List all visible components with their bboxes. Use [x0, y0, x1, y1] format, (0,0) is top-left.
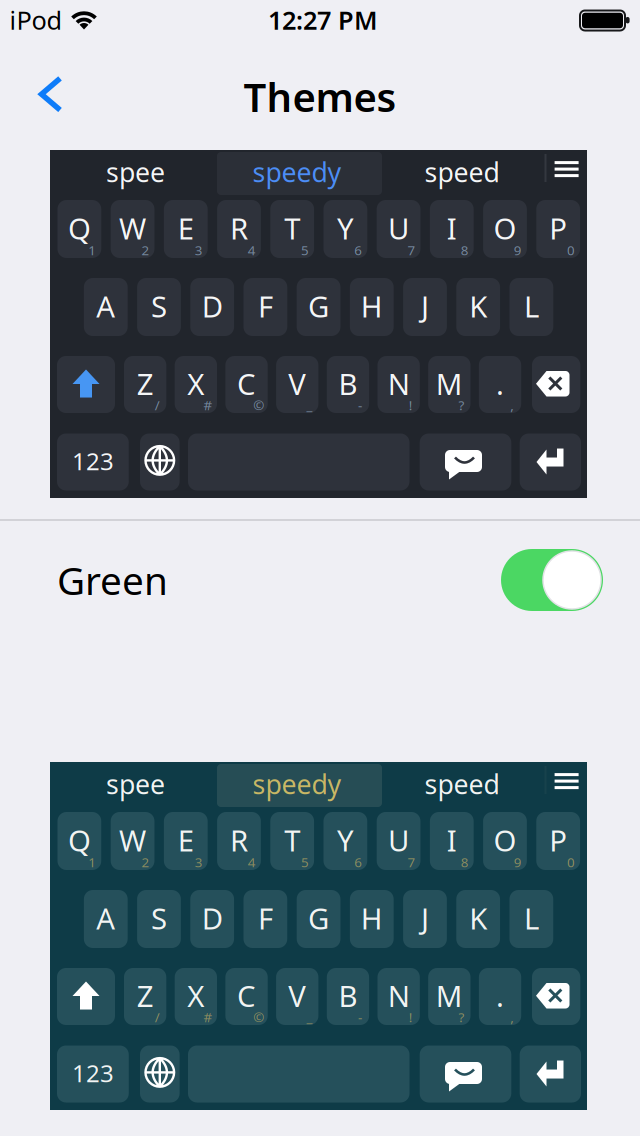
staticText: 3 — [195, 853, 203, 871]
staticText: 123 — [72, 1057, 114, 1089]
staticText: 3 — [195, 241, 203, 259]
staticText: M — [436, 976, 463, 1015]
staticText: ? — [458, 396, 464, 414]
staticText: Green — [57, 554, 168, 606]
staticText: F — [258, 286, 273, 325]
staticText: # — [203, 1008, 212, 1026]
staticText: M — [436, 364, 463, 403]
staticText: U — [388, 208, 409, 247]
staticText: 4 — [248, 241, 256, 259]
staticText: L — [524, 286, 539, 325]
staticText: © — [253, 396, 264, 414]
staticText: 1 — [88, 241, 96, 259]
staticText: 0 — [567, 853, 575, 871]
staticText: 6 — [354, 853, 362, 871]
staticText: N — [388, 976, 410, 1015]
staticText: - — [358, 396, 362, 414]
staticText: U — [388, 820, 409, 859]
staticText: 8 — [461, 241, 469, 259]
staticText: X — [187, 364, 204, 403]
staticText: C — [237, 976, 256, 1015]
staticText: W — [119, 820, 146, 859]
staticText: . — [496, 976, 504, 1015]
staticText: H — [361, 286, 383, 325]
staticText: 7 — [407, 241, 415, 259]
staticText: I — [447, 820, 457, 859]
staticText: E — [178, 820, 194, 859]
staticText: T — [284, 208, 300, 247]
staticText: L — [524, 898, 539, 937]
staticText: P — [549, 820, 567, 859]
staticText: O — [493, 208, 516, 247]
staticText: Themes — [243, 70, 396, 123]
staticText: _ — [306, 396, 312, 414]
staticText: K — [469, 898, 487, 937]
staticText: Y — [337, 208, 354, 247]
staticText: 0 — [567, 241, 575, 259]
staticText: spee — [106, 154, 165, 190]
staticText: D — [202, 898, 223, 937]
button[interactable]: spee — [50, 150, 587, 498]
staticText: Z — [137, 364, 154, 403]
staticText: I — [447, 208, 457, 247]
staticText: H — [361, 898, 383, 937]
staticText: W — [119, 208, 146, 247]
staticText: K — [469, 286, 487, 325]
staticText: _ — [306, 1008, 312, 1026]
staticText: 9 — [514, 241, 522, 259]
staticText: speed — [424, 154, 499, 190]
staticText: speedy — [252, 766, 341, 802]
staticText: A — [96, 898, 115, 937]
staticText: iPod — [9, 3, 62, 37]
staticText: / — [155, 396, 160, 414]
staticText: 4 — [248, 853, 256, 871]
staticText: F — [258, 898, 273, 937]
staticText: N — [388, 364, 410, 403]
staticText: G — [308, 898, 329, 937]
staticText: spee — [106, 766, 165, 802]
staticText: speed — [424, 766, 499, 802]
button[interactable]: Green — [0, 520, 640, 640]
staticText: 1 — [88, 853, 96, 871]
staticText: / — [155, 1008, 160, 1026]
staticText: V — [288, 976, 306, 1015]
staticText: O — [493, 820, 516, 859]
staticText: R — [230, 208, 248, 247]
staticText: 5 — [301, 853, 309, 871]
staticText: S — [151, 898, 167, 937]
staticText: 2 — [141, 241, 149, 259]
staticText: Q — [68, 820, 91, 859]
staticText: P — [549, 208, 567, 247]
staticText: D — [202, 286, 223, 325]
staticText: # — [203, 396, 212, 414]
staticText: R — [230, 820, 248, 859]
staticText: 8 — [461, 853, 469, 871]
staticText: Y — [337, 820, 354, 859]
staticText: C — [237, 364, 256, 403]
staticText: speedy — [252, 154, 341, 190]
button[interactable]: spee — [50, 762, 587, 1110]
staticText: Q — [68, 208, 91, 247]
staticText: 123 — [72, 445, 114, 477]
staticText: 12:27 PM — [268, 3, 378, 37]
staticText: 9 — [514, 853, 522, 871]
staticText: B — [338, 976, 357, 1015]
staticText: S — [151, 286, 167, 325]
staticText: 5 — [301, 241, 309, 259]
staticText: - — [358, 1008, 362, 1026]
staticText: Z — [137, 976, 154, 1015]
staticText: G — [308, 286, 329, 325]
staticText: J — [421, 286, 429, 325]
staticText: ! — [409, 1008, 413, 1026]
staticText: X — [187, 976, 204, 1015]
staticText: . — [496, 364, 504, 403]
staticText: 6 — [354, 241, 362, 259]
staticText: V — [288, 364, 306, 403]
staticText: B — [338, 364, 357, 403]
staticText: ! — [409, 396, 413, 414]
staticText: 2 — [141, 853, 149, 871]
staticText: , — [510, 1008, 514, 1026]
button[interactable] — [38, 75, 62, 113]
staticText: J — [421, 898, 429, 937]
staticText: A — [96, 286, 115, 325]
